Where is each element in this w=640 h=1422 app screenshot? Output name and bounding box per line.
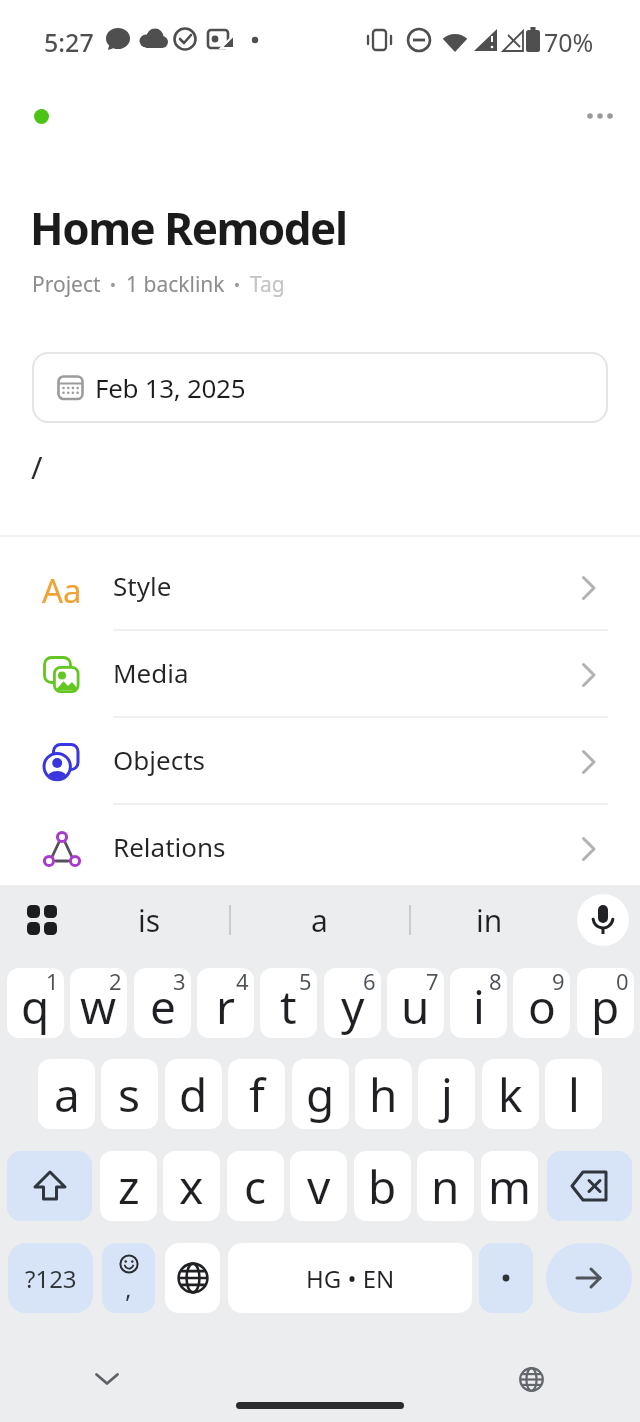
staticText: Tag bbox=[250, 270, 285, 299]
button[interactable]: y bbox=[324, 968, 381, 1038]
button[interactable]: Feb 13, 2025 bbox=[32, 352, 608, 423]
staticText: r bbox=[216, 975, 235, 1038]
staticText: u bbox=[401, 975, 430, 1038]
button[interactable]: b bbox=[354, 1151, 411, 1221]
button[interactable]: q bbox=[7, 968, 64, 1038]
staticText: y bbox=[341, 975, 365, 1038]
button[interactable] bbox=[577, 894, 629, 946]
button[interactable] bbox=[576, 94, 624, 138]
staticText: 0 bbox=[616, 968, 629, 996]
staticText: • bbox=[225, 273, 250, 296]
staticText: Relations bbox=[113, 829, 226, 864]
staticText: s bbox=[118, 1063, 141, 1126]
button[interactable]: x bbox=[163, 1151, 220, 1221]
staticText: / bbox=[31, 446, 43, 488]
staticText: j bbox=[441, 1063, 453, 1126]
staticText: 2 bbox=[109, 968, 122, 996]
button[interactable]: r bbox=[197, 968, 254, 1038]
button[interactable] bbox=[547, 1151, 632, 1221]
staticText: l bbox=[568, 1063, 580, 1126]
staticText: is bbox=[138, 900, 161, 941]
staticText: Feb 13, 2025 bbox=[95, 370, 246, 405]
button[interactable]: w bbox=[70, 968, 127, 1038]
staticText: d bbox=[179, 1063, 208, 1126]
staticText: w bbox=[80, 975, 117, 1038]
button[interactable]: a bbox=[38, 1059, 95, 1129]
staticText: ?123 bbox=[25, 1262, 77, 1295]
button[interactable]: o bbox=[513, 968, 570, 1038]
button[interactable]: j bbox=[418, 1059, 475, 1129]
button[interactable]: a bbox=[229, 885, 409, 955]
button[interactable]: Media bbox=[0, 631, 640, 718]
staticText: b bbox=[368, 1155, 397, 1218]
staticText: c bbox=[244, 1155, 267, 1218]
button[interactable] bbox=[499, 1355, 563, 1403]
staticText: z bbox=[118, 1155, 140, 1218]
staticText: 8 bbox=[489, 968, 502, 996]
staticText: a bbox=[311, 900, 328, 941]
staticText: 1 bbox=[46, 968, 59, 996]
staticText: 7 bbox=[426, 968, 439, 996]
staticText: a bbox=[54, 1063, 80, 1126]
button[interactable] bbox=[34, 109, 49, 124]
button[interactable] bbox=[7, 1151, 92, 1221]
staticText: p bbox=[591, 975, 620, 1038]
button[interactable]: Objects bbox=[0, 718, 640, 805]
staticText: 9 bbox=[552, 968, 565, 996]
button[interactable]: Aa bbox=[0, 544, 640, 631]
staticText: o bbox=[528, 975, 556, 1038]
staticText: 5:27 bbox=[44, 25, 94, 59]
staticText: n bbox=[431, 1155, 460, 1218]
button[interactable]: g bbox=[292, 1059, 349, 1129]
button[interactable]: c bbox=[227, 1151, 284, 1221]
staticText: 3 bbox=[173, 968, 186, 996]
staticText: HG • EN bbox=[306, 1262, 395, 1295]
button[interactable]: l bbox=[545, 1059, 602, 1129]
staticText: 70% bbox=[544, 25, 594, 59]
button[interactable]: d bbox=[165, 1059, 222, 1129]
staticText: Media bbox=[113, 655, 189, 690]
button[interactable]: Relations bbox=[0, 805, 640, 892]
button[interactable]: t bbox=[260, 968, 317, 1038]
button[interactable]: i bbox=[450, 968, 507, 1038]
button[interactable] bbox=[165, 1243, 220, 1313]
button[interactable]: HG • EN bbox=[228, 1243, 472, 1313]
staticText: , bbox=[125, 1271, 132, 1305]
button[interactable] bbox=[75, 1355, 139, 1403]
button[interactable]: z bbox=[100, 1151, 157, 1221]
button[interactable] bbox=[14, 892, 70, 948]
staticText: g bbox=[306, 1063, 335, 1126]
staticText: k bbox=[498, 1063, 523, 1126]
staticText: 5 bbox=[299, 968, 312, 996]
staticText: Project bbox=[32, 270, 101, 299]
button[interactable]: m bbox=[481, 1151, 538, 1221]
staticText: Style bbox=[113, 568, 172, 603]
button[interactable]: s bbox=[101, 1059, 158, 1129]
button[interactable] bbox=[546, 1243, 632, 1313]
staticText: f bbox=[249, 1063, 265, 1126]
staticText: v bbox=[307, 1155, 331, 1218]
staticText: 4 bbox=[236, 968, 249, 996]
button[interactable]: n bbox=[417, 1151, 474, 1221]
button[interactable]: ?123 bbox=[8, 1243, 93, 1313]
staticText: m bbox=[488, 1155, 532, 1218]
button[interactable]: is bbox=[70, 885, 229, 955]
button[interactable]: e bbox=[134, 968, 191, 1038]
staticText: 6 bbox=[363, 968, 376, 996]
button[interactable]: , bbox=[102, 1243, 155, 1313]
staticText: i bbox=[473, 975, 485, 1038]
button[interactable]: f bbox=[228, 1059, 285, 1129]
staticText: q bbox=[21, 975, 50, 1038]
button[interactable]: p bbox=[577, 968, 634, 1038]
button[interactable]: v bbox=[290, 1151, 347, 1221]
button[interactable]: u bbox=[387, 968, 444, 1038]
staticText: 1 backlink bbox=[126, 270, 225, 299]
staticText: in bbox=[476, 900, 503, 941]
staticText: e bbox=[150, 975, 176, 1038]
button[interactable] bbox=[479, 1243, 533, 1313]
button[interactable]: h bbox=[355, 1059, 412, 1129]
button[interactable]: in bbox=[409, 885, 569, 955]
staticText: Home Remodel bbox=[30, 198, 347, 258]
staticText: Aa bbox=[42, 568, 82, 608]
button[interactable]: k bbox=[482, 1059, 539, 1129]
